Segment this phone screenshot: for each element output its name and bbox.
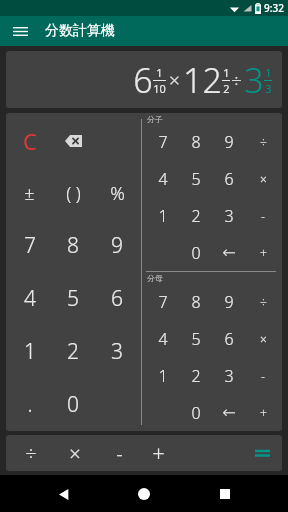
button[interactable]: 3 [212,357,246,394]
staticText: 6 [224,328,234,350]
button[interactable]: 6 [95,272,139,325]
staticText: - [261,368,265,384]
staticText: ( ) [66,181,81,206]
staticText: 9 [111,231,123,260]
button[interactable]: 4 [8,272,51,325]
button[interactable]: 5 [51,272,95,325]
button[interactable]: 2 [179,197,212,234]
button[interactable]: 1 [146,197,179,234]
button[interactable]: + [141,435,175,471]
staticText: 6 [133,57,153,103]
button[interactable]: × [53,435,97,471]
button[interactable]: 6 [212,160,246,197]
staticText: % [110,181,125,206]
staticText: 1 [158,205,168,227]
button[interactable]: 0 [179,234,212,271]
button[interactable]: 2 [51,325,95,378]
staticText: 3 [244,57,264,103]
button[interactable]: + [246,234,280,271]
staticText: 1 [265,65,272,80]
staticText: 5 [67,284,79,313]
staticText: 分母 [147,273,163,283]
button[interactable]: ← [212,234,246,271]
button[interactable]: 1 [8,325,51,378]
staticText: 1 [156,65,163,80]
staticText: 10 [153,81,166,96]
button[interactable]: ÷ [246,283,280,320]
staticText: 3 [224,365,234,387]
staticText: . [27,390,33,419]
staticText: 6 [224,168,234,190]
staticText: 9 [224,131,234,153]
staticText: + [260,245,267,261]
button[interactable]: ÷ [246,124,280,160]
button[interactable]: 8 [51,219,95,272]
button[interactable]: × [246,320,280,357]
staticText: 12 [183,57,222,103]
staticText: × [260,171,267,187]
staticText: 1 [24,337,36,366]
button[interactable]: Back [47,477,81,511]
staticText: 3 [111,337,123,366]
staticText: 9:32 [264,1,284,15]
button[interactable]: Home [127,477,161,511]
staticText: ÷ [260,134,267,150]
staticText: ÷ [260,294,267,310]
staticText: 2 [191,205,201,227]
button[interactable]: 9 [95,219,139,272]
staticText: C [23,126,37,156]
button[interactable]: 6 [212,320,246,357]
staticText: 0 [191,402,201,424]
button[interactable]: Recents [208,477,242,511]
staticText: 2 [67,337,79,366]
staticText: 4 [24,284,36,313]
button[interactable]: C [8,115,51,167]
button[interactable]: 1 [146,357,179,394]
button[interactable]: 7 [146,283,179,320]
button[interactable]: - [246,357,280,394]
button[interactable]: % [95,167,139,219]
button[interactable]: 7 [146,124,179,160]
button[interactable]: ← [212,394,246,431]
button[interactable]: 0 [179,394,212,431]
button[interactable]: 8 [179,124,212,160]
staticText: - [261,208,265,224]
staticText: × [169,67,180,93]
button[interactable]: Menu [8,19,32,43]
staticText: 5 [191,328,201,350]
staticText: 8 [191,131,201,153]
button[interactable]: - [97,435,141,471]
staticText: 8 [67,231,79,260]
staticText: × [69,440,81,467]
button[interactable]: 4 [146,160,179,197]
button[interactable]: 4 [146,320,179,357]
button[interactable]: . [8,378,51,431]
button[interactable]: ± [8,167,51,219]
staticText: 3 [224,205,234,227]
button[interactable]: 7 [8,219,51,272]
button[interactable]: 5 [179,160,212,197]
button[interactable]: Equals [245,435,280,471]
button[interactable]: ( ) [51,167,95,219]
button[interactable]: 8 [179,283,212,320]
button[interactable]: - [246,197,280,234]
staticText: 3 [265,81,272,96]
button[interactable]: 3 [212,197,246,234]
button[interactable]: 9 [212,124,246,160]
button[interactable]: ÷ [8,435,53,471]
staticText: ← [222,403,236,422]
staticText: ± [24,181,35,206]
button[interactable]: Backspace [51,115,95,167]
staticText: 8 [191,291,201,313]
button[interactable]: 9 [212,283,246,320]
button[interactable]: 0 [51,378,95,431]
staticText: - [116,440,123,467]
button[interactable]: + [246,394,280,431]
button[interactable]: 3 [95,325,139,378]
button[interactable]: 2 [179,357,212,394]
button[interactable]: × [246,160,280,197]
button[interactable]: 5 [179,320,212,357]
staticText: 4 [158,328,168,350]
staticText: 7 [158,131,168,153]
staticText: 分数計算機 [45,22,115,40]
